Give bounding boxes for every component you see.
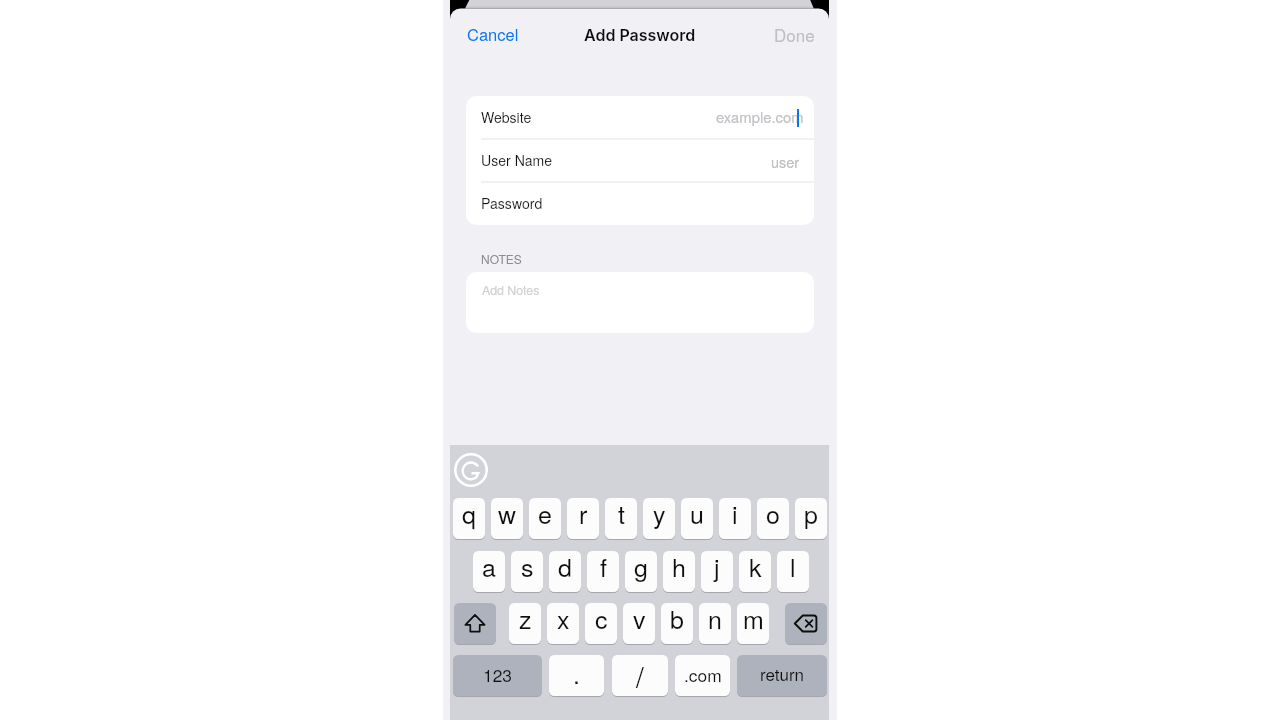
button[interactable]: q <box>453 498 485 539</box>
staticText: Add Notes <box>482 281 540 299</box>
staticText: g <box>634 551 648 584</box>
button[interactable]: i <box>719 498 751 539</box>
staticText: user <box>771 151 800 172</box>
button[interactable]: k <box>739 551 771 592</box>
staticText: Done <box>774 22 815 46</box>
staticText: p <box>804 498 818 531</box>
button[interactable]: x <box>547 603 579 644</box>
button[interactable]: Cancel <box>455 9 531 59</box>
staticText: f <box>600 551 607 584</box>
button[interactable]: a <box>473 551 505 592</box>
staticText: Website <box>481 107 532 127</box>
staticText: x <box>557 603 570 636</box>
staticText: User Name <box>481 150 553 170</box>
button[interactable]: l <box>777 551 809 592</box>
button[interactable]: f <box>587 551 619 592</box>
staticText: s <box>521 551 534 584</box>
staticText: j <box>714 551 720 584</box>
staticText: 123 <box>483 662 513 687</box>
button[interactable]: 123 <box>453 655 542 696</box>
staticText: return <box>760 661 805 685</box>
staticText: Cancel <box>467 22 519 46</box>
staticText: Add Password <box>584 25 696 44</box>
staticText: t <box>618 498 625 531</box>
button[interactable]: Website <box>466 96 814 138</box>
button[interactable]: Grammarly keyboard <box>454 453 488 487</box>
staticText: o <box>766 498 780 531</box>
staticText: .com <box>684 662 722 687</box>
staticText: e <box>538 498 552 531</box>
button[interactable]: g <box>625 551 657 592</box>
button[interactable]: b <box>661 603 693 644</box>
staticText: y <box>653 498 666 531</box>
button[interactable]: . <box>549 655 604 696</box>
staticText: NOTES <box>481 250 522 267</box>
button[interactable]: Password <box>466 181 814 225</box>
button[interactable]: j <box>701 551 733 592</box>
staticText: l <box>790 551 796 584</box>
staticText: h <box>672 551 686 584</box>
button[interactable]: u <box>681 498 713 539</box>
staticText: q <box>462 498 476 531</box>
button[interactable]: d <box>549 551 581 592</box>
staticText: w <box>498 498 517 531</box>
button[interactable]: s <box>511 551 543 592</box>
button[interactable]: y <box>643 498 675 539</box>
button[interactable]: return <box>737 655 827 696</box>
button[interactable]: p <box>795 498 827 539</box>
staticText: b <box>670 603 684 636</box>
staticText: n <box>708 603 722 636</box>
button[interactable]: c <box>585 603 617 644</box>
button[interactable]: w <box>491 498 523 539</box>
button[interactable]: m <box>737 603 769 644</box>
staticText: k <box>749 551 762 584</box>
button[interactable]: / <box>612 655 668 696</box>
button[interactable]: o <box>757 498 789 539</box>
button[interactable]: n <box>699 603 731 644</box>
staticText: Password <box>481 193 543 213</box>
button[interactable]: t <box>605 498 637 539</box>
button[interactable]: e <box>529 498 561 539</box>
button[interactable]: Done <box>762 9 827 59</box>
staticText: c <box>595 603 608 636</box>
button[interactable]: r <box>567 498 599 539</box>
staticText: a <box>482 551 496 584</box>
staticText: / <box>636 656 644 696</box>
staticText: m <box>743 603 764 636</box>
staticText: z <box>519 603 532 636</box>
staticText: r <box>579 498 588 531</box>
button[interactable]: z <box>509 603 541 644</box>
button[interactable]: v <box>623 603 655 644</box>
button[interactable]: Backspace <box>785 603 827 644</box>
staticText: u <box>690 498 704 531</box>
button[interactable]: User Name <box>466 138 814 181</box>
button[interactable]: h <box>663 551 695 592</box>
staticText: d <box>558 551 572 584</box>
button[interactable]: .com <box>675 655 730 696</box>
button[interactable]: Add Notes <box>466 272 814 333</box>
staticText: i <box>732 498 738 531</box>
staticText: example.com <box>716 106 804 127</box>
staticText: v <box>633 603 646 636</box>
staticText: . <box>573 655 580 691</box>
button[interactable]: Shift <box>454 603 496 644</box>
